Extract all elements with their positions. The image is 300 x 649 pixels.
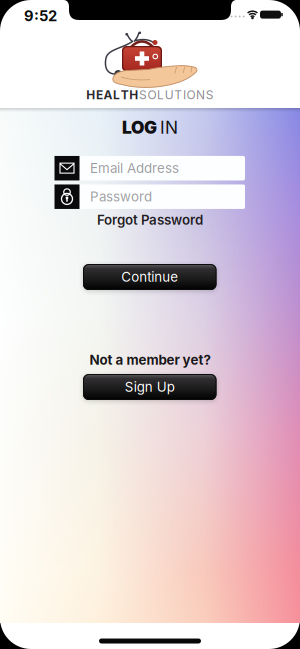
staticText: H xyxy=(129,88,138,102)
staticText: U xyxy=(165,88,174,102)
button[interactable]: Email Address xyxy=(54,156,245,180)
staticText: A xyxy=(103,88,112,102)
button[interactable]: Continue xyxy=(83,264,216,290)
staticText: Email Address xyxy=(90,160,179,176)
staticText: I xyxy=(183,88,186,102)
staticText: Forgot Password xyxy=(97,212,203,228)
button[interactable]: Password xyxy=(54,184,245,209)
staticText: E xyxy=(96,88,103,102)
staticText: Password xyxy=(90,189,152,204)
button[interactable]: Forgot Password xyxy=(97,212,203,228)
staticText: H xyxy=(86,88,95,102)
staticText: T xyxy=(121,88,129,102)
staticText: L xyxy=(113,88,120,102)
staticText: S xyxy=(139,88,147,102)
staticText: LOG IN xyxy=(122,117,178,138)
staticText: T xyxy=(174,88,182,102)
staticText: Continue xyxy=(121,269,178,285)
staticText: O xyxy=(147,88,156,102)
staticText: L xyxy=(157,88,164,102)
staticText: S xyxy=(206,88,214,102)
staticText: Sign Up xyxy=(125,379,175,395)
button[interactable]: Sign Up xyxy=(83,374,216,400)
staticText: N xyxy=(196,88,205,102)
staticText: 9:52 xyxy=(24,7,57,25)
staticText: Not a member yet? xyxy=(89,352,210,368)
staticText: O xyxy=(186,88,195,102)
